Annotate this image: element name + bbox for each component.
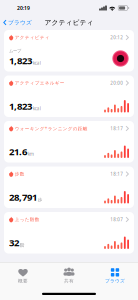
staticText: 20:00 bbox=[110, 80, 123, 86]
staticText: 20:12 bbox=[110, 34, 123, 41]
staticText: アクティブエネルギー bbox=[15, 80, 65, 86]
staticText: ムーブ bbox=[9, 48, 21, 53]
staticText: ウォーキング+ランニングの距離 bbox=[15, 125, 88, 132]
staticText: 概要 bbox=[18, 278, 28, 284]
staticText: 21.6 bbox=[9, 145, 27, 158]
staticText: 1,823 bbox=[9, 99, 32, 112]
staticText: 18:07 bbox=[110, 216, 123, 223]
button[interactable]: ブラウズ bbox=[0, 16, 36, 29]
staticText: 階 bbox=[20, 242, 25, 248]
staticText: kcal bbox=[33, 105, 41, 112]
button[interactable]: ウォーキング+ランニングの距離 bbox=[4, 121, 134, 162]
staticText: 歩数 bbox=[15, 171, 25, 177]
button[interactable]: 共有 bbox=[46, 265, 92, 287]
staticText: 共有 bbox=[64, 278, 74, 284]
staticText: 1,823 bbox=[9, 54, 32, 67]
button[interactable]: アクティブエネルギー bbox=[4, 75, 134, 117]
staticText: km bbox=[28, 151, 34, 157]
button[interactable]: 上った階数 bbox=[4, 212, 134, 253]
staticText: 18:17 bbox=[110, 171, 123, 177]
staticText: 32 bbox=[9, 236, 19, 249]
button[interactable]: 歩数 bbox=[4, 166, 134, 208]
staticText: アクティビティ bbox=[44, 18, 93, 27]
staticText: アクティビティ bbox=[15, 35, 50, 40]
button[interactable]: 概要 bbox=[0, 265, 46, 287]
button[interactable]: ブラウズ bbox=[92, 265, 138, 287]
staticText: ブラウズ bbox=[8, 19, 32, 26]
staticText: 歩 bbox=[38, 197, 43, 203]
staticText: 上った階数 bbox=[15, 217, 40, 222]
button[interactable]: アクティビティ bbox=[4, 30, 134, 71]
staticText: 28,791 bbox=[9, 190, 37, 203]
staticText: 18:17 bbox=[110, 125, 123, 132]
staticText: ブラウズ bbox=[105, 278, 125, 284]
staticText: 20:19 bbox=[17, 4, 30, 11]
staticText: kcal bbox=[33, 60, 41, 66]
